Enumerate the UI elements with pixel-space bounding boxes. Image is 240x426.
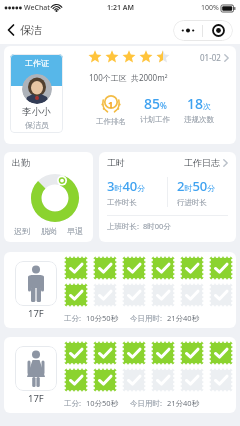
staticText: 保洁员 bbox=[25, 120, 49, 130]
staticText: 1 bbox=[108, 98, 114, 110]
staticText: 行进时长 bbox=[177, 198, 207, 207]
staticText: 10分50秒 bbox=[86, 313, 119, 323]
staticText: 100个工区 共2000m² bbox=[89, 72, 168, 83]
button[interactable] bbox=[15, 346, 57, 391]
staticText: 出勤 bbox=[12, 157, 30, 168]
button[interactable] bbox=[173, 20, 202, 41]
staticText: 85% bbox=[144, 94, 167, 113]
staticText: 早退 bbox=[67, 226, 83, 236]
staticText: 3时40分 bbox=[107, 177, 146, 195]
button[interactable]: 工作日志 bbox=[184, 157, 228, 168]
staticText: 今日用时: bbox=[130, 313, 163, 323]
button[interactable]: 出勤 bbox=[4, 152, 93, 242]
staticText: 工作日志 bbox=[184, 157, 220, 168]
staticText: 违规次数 bbox=[184, 115, 214, 124]
staticText: 工时 bbox=[107, 157, 125, 168]
staticText: 2时50分 bbox=[177, 177, 216, 195]
button[interactable]: 17F bbox=[4, 252, 236, 328]
staticText: 1:21 AM bbox=[107, 3, 134, 13]
button[interactable]: 17F bbox=[4, 337, 236, 413]
staticText: 工作证 bbox=[25, 58, 49, 68]
staticText: 今日用时: bbox=[130, 398, 163, 408]
staticText: 18次 bbox=[187, 94, 212, 113]
staticText: 迟到 bbox=[14, 226, 30, 236]
staticText: 工分: bbox=[64, 398, 82, 408]
button[interactable] bbox=[15, 261, 57, 306]
staticText: 17F bbox=[28, 307, 44, 320]
staticText: 计划工作 bbox=[140, 115, 170, 124]
staticText: 01-02 bbox=[200, 52, 221, 63]
staticText: 脱岗 bbox=[41, 226, 57, 236]
staticText: 21分40秒 bbox=[167, 398, 200, 408]
staticText: 李小小 bbox=[22, 106, 51, 118]
staticText: 工分: bbox=[64, 313, 82, 323]
staticText: 工作排名 bbox=[96, 117, 126, 126]
staticText: 21分40秒 bbox=[167, 313, 200, 323]
staticText: 工作时长 bbox=[107, 198, 137, 207]
button[interactable]: 工作证 bbox=[10, 54, 63, 133]
button[interactable] bbox=[203, 20, 233, 41]
staticText: 上班时长: 8时00分 bbox=[107, 221, 171, 231]
button[interactable]: 01-02 bbox=[200, 52, 229, 63]
staticText: WeChat bbox=[24, 3, 50, 13]
staticText: 17F bbox=[28, 392, 44, 405]
staticText: 10分50秒 bbox=[86, 398, 119, 408]
staticText: 保洁 bbox=[20, 23, 42, 37]
staticText: 100% bbox=[201, 3, 219, 13]
button[interactable]: 保洁 bbox=[7, 23, 42, 37]
